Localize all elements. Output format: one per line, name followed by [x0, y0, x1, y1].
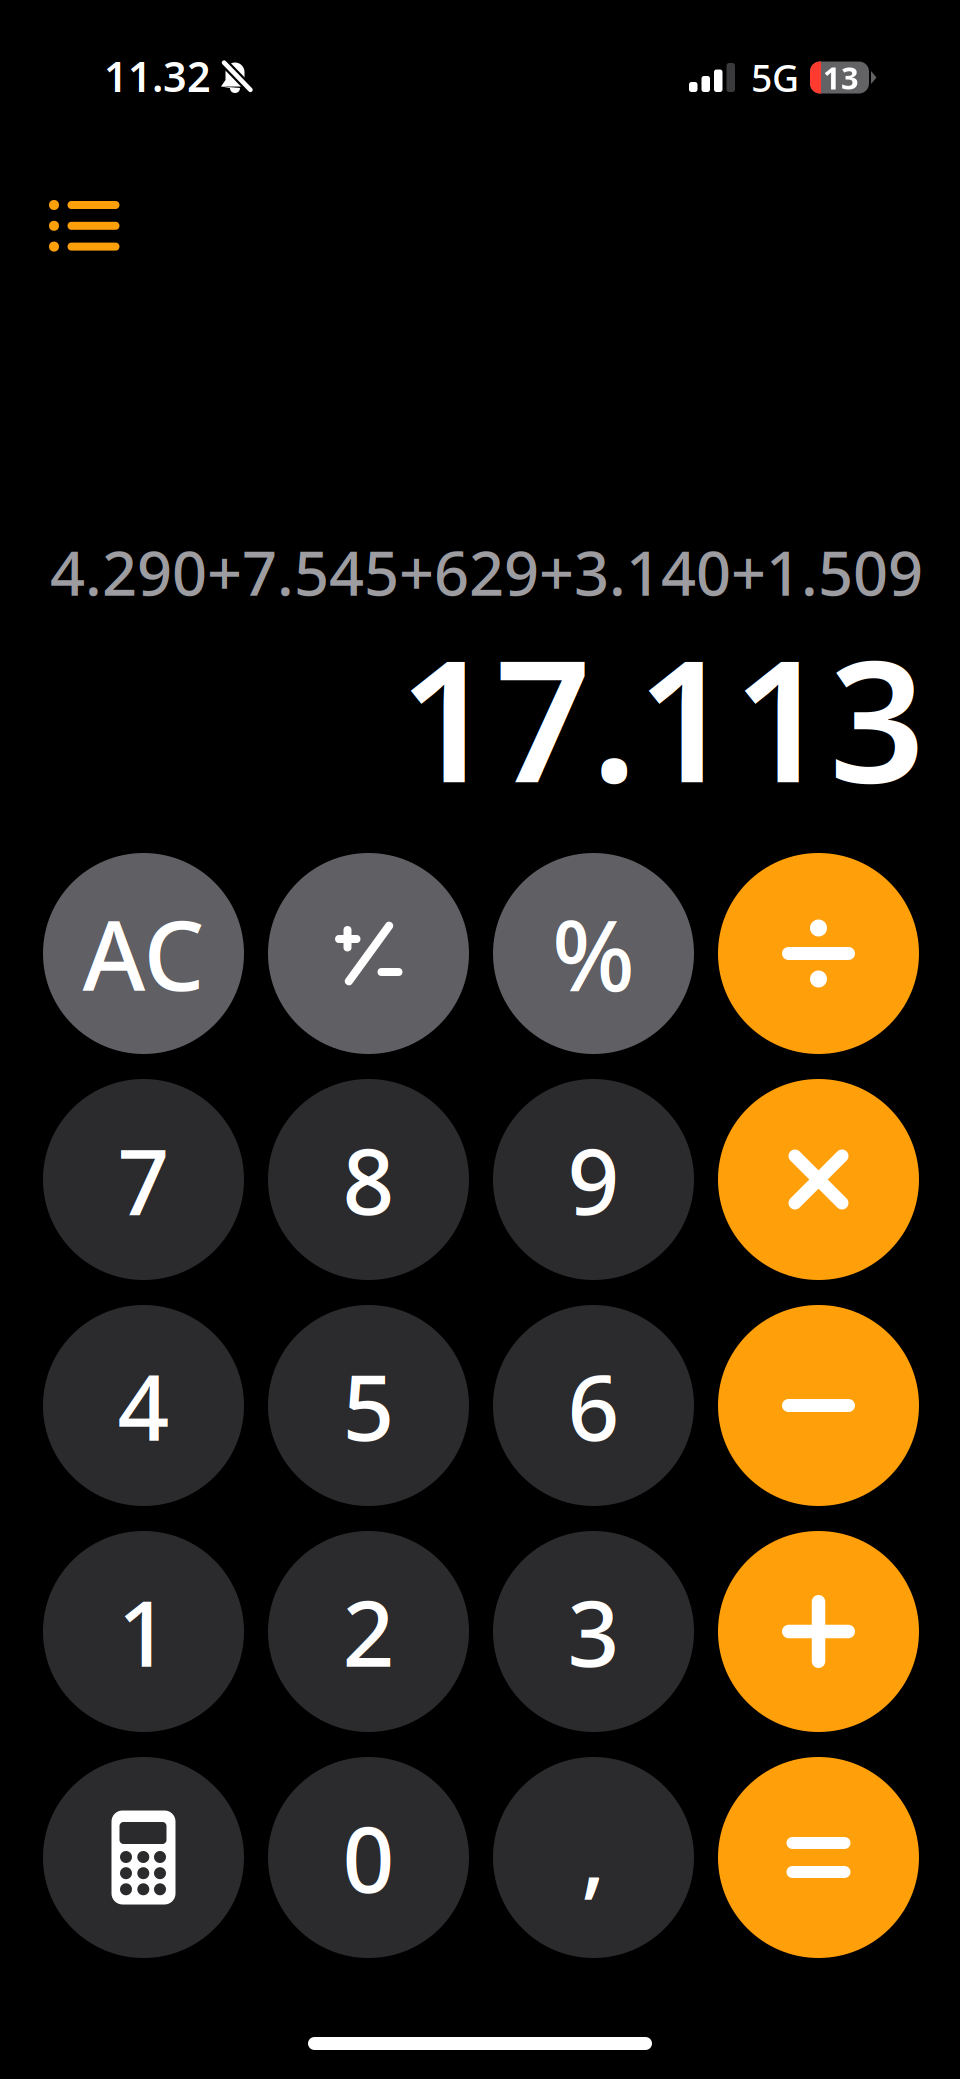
button[interactable]: Subtract — [718, 1305, 919, 1506]
button[interactable]: 0 — [268, 1757, 469, 1958]
button[interactable]: 3 — [493, 1531, 694, 1732]
button[interactable]: 8 — [268, 1079, 469, 1280]
staticText: 11.32 — [104, 49, 211, 103]
button[interactable]: Keypad — [43, 1757, 244, 1958]
button[interactable]: Divide — [718, 853, 919, 1054]
staticText: 7 — [117, 1119, 169, 1240]
button[interactable]: , — [493, 1757, 694, 1958]
staticText: 6 — [567, 1345, 619, 1466]
staticText: 17.113 — [399, 605, 925, 829]
staticText: 9 — [567, 1119, 619, 1240]
button[interactable]: 1 — [43, 1531, 244, 1732]
button[interactable]: Equals — [718, 1757, 919, 1958]
button[interactable]: Plus minus — [268, 853, 469, 1054]
button[interactable]: 5 — [268, 1305, 469, 1506]
button[interactable]: % — [493, 853, 694, 1054]
staticText: 0 — [342, 1797, 394, 1918]
button[interactable]: Multiply — [718, 1079, 919, 1280]
staticText: 1 — [117, 1571, 169, 1692]
button[interactable]: 4 — [43, 1305, 244, 1506]
staticText: 4.290+7.545+629+3.140+1.509 — [50, 531, 923, 613]
staticText: 5G — [751, 53, 799, 102]
staticText: % — [552, 889, 635, 1018]
staticText: 5 — [342, 1345, 394, 1466]
button[interactable]: AC — [43, 853, 244, 1054]
button[interactable]: Add — [718, 1531, 919, 1732]
button[interactable]: History — [39, 175, 163, 277]
staticText: 13 — [823, 57, 859, 98]
staticText: 3 — [567, 1571, 619, 1692]
staticText: , — [581, 1792, 606, 1913]
staticText: 2 — [342, 1571, 394, 1692]
button[interactable]: 6 — [493, 1305, 694, 1506]
button[interactable]: 7 — [43, 1079, 244, 1280]
staticText: AC — [82, 890, 204, 1017]
button[interactable]: 2 — [268, 1531, 469, 1732]
button[interactable]: 9 — [493, 1079, 694, 1280]
staticText: 8 — [342, 1119, 394, 1240]
staticText: 4 — [117, 1345, 169, 1466]
